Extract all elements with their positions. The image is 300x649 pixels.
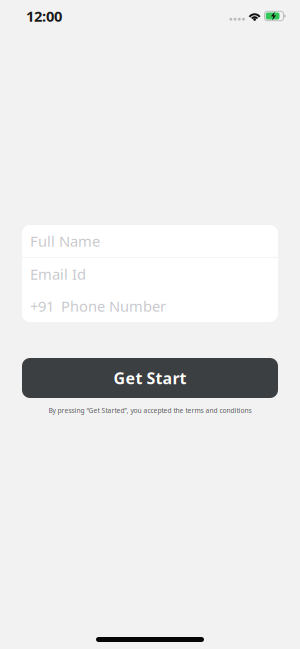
staticText: +91	[30, 296, 54, 316]
button[interactable]: +91	[22, 290, 278, 322]
staticText: Phone Number	[61, 296, 166, 316]
staticText: By pressing “Get Started”, you accepted …	[48, 406, 251, 415]
button[interactable]: Full Name	[22, 225, 278, 257]
button[interactable]: Get Start	[22, 358, 278, 398]
staticText: Email Id	[30, 264, 86, 284]
staticText: 12:00	[26, 6, 62, 26]
staticText: Full Name	[30, 231, 100, 251]
staticText: Get Start	[113, 367, 186, 389]
button[interactable]: Email Id	[22, 258, 278, 290]
